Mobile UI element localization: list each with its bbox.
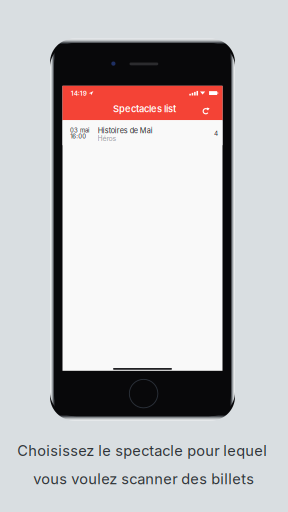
staticText: Choisissez le spectacle pour lequel [17, 442, 267, 459]
staticText: Héros [98, 134, 117, 143]
staticText: Histoires de Mai [98, 126, 153, 135]
staticText: vous voulez scanner des billets [33, 470, 254, 488]
staticText: 16:00 [70, 133, 86, 140]
staticText: 4 [214, 129, 218, 137]
button[interactable]: 03 mai [62, 120, 222, 145]
staticText: 03 mai [70, 127, 89, 134]
button[interactable]: Refresh [198, 103, 214, 119]
staticText: Spectacles list [113, 103, 176, 115]
staticText: 14:19 [71, 89, 87, 97]
